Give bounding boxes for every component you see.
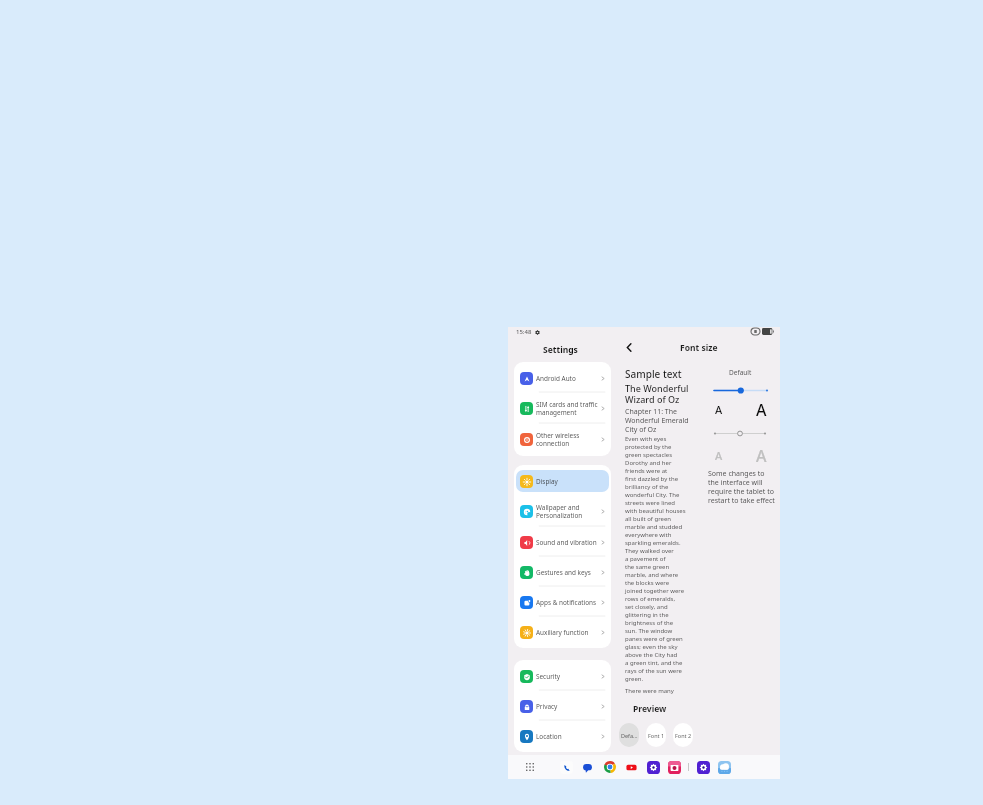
staticText: Wallpaper and Personalization <box>536 503 601 520</box>
button[interactable]: Back <box>622 340 636 354</box>
button[interactable]: Privacy <box>516 691 609 721</box>
staticText: A <box>715 448 723 463</box>
button[interactable]: Messages <box>580 760 594 774</box>
button[interactable]: Font size slider <box>712 386 769 395</box>
staticText: The Wonderful Wizard of Oz <box>625 382 689 406</box>
staticText: Security <box>536 672 601 681</box>
button[interactable]: All apps <box>522 759 538 775</box>
button[interactable]: Location <box>516 721 609 751</box>
staticText: Font 2 <box>675 732 692 739</box>
button[interactable]: Chrome <box>603 760 617 774</box>
staticText: Chapter 11: The Wonderful Emerald City o… <box>625 407 689 434</box>
button[interactable]: SIM cards and traffic management <box>516 393 609 424</box>
staticText: Defa... <box>621 732 638 739</box>
staticText: Auxiliary function <box>536 628 601 637</box>
button[interactable]: Auxiliary function <box>516 617 609 647</box>
button[interactable]: YouTube <box>624 760 638 774</box>
button[interactable]: Wallpaper and Personalization <box>516 496 609 527</box>
button[interactable]: Weather <box>717 760 731 774</box>
button[interactable]: Camera <box>667 760 681 774</box>
staticText: Sound and vibration <box>536 538 601 547</box>
staticText: Other wireless connection <box>536 431 601 448</box>
staticText: Location <box>536 732 601 741</box>
staticText: Android Auto <box>536 374 601 383</box>
button[interactable]: Settings <box>646 760 660 774</box>
staticText: Apps & notifications <box>536 598 601 607</box>
button[interactable]: Security <box>516 661 609 691</box>
button[interactable]: Settings <box>696 760 710 774</box>
staticText: Preview <box>633 703 667 715</box>
staticText: Gestures and keys <box>536 568 601 577</box>
button[interactable]: Other wireless connection <box>516 424 609 455</box>
button[interactable]: Gestures and keys <box>516 557 609 587</box>
staticText: Display <box>536 477 605 486</box>
button[interactable]: Display <box>516 470 609 492</box>
staticText: A <box>756 399 767 417</box>
staticText: Even with eyes protected by the green sp… <box>625 435 686 683</box>
staticText: Sample text <box>625 367 682 381</box>
staticText: Settings <box>543 344 578 356</box>
staticText: SIM cards and traffic management <box>536 400 601 417</box>
staticText: Some changes to the interface will requi… <box>708 469 775 505</box>
staticText: Privacy <box>536 702 601 711</box>
staticText: Font 1 <box>648 732 665 739</box>
staticText: A <box>756 445 767 463</box>
staticText: Font size <box>680 342 718 354</box>
button[interactable]: Android Auto <box>516 363 609 393</box>
staticText: Default <box>729 368 752 377</box>
button[interactable]: Apps & notifications <box>516 587 609 617</box>
button[interactable]: Bold text slider <box>713 429 767 438</box>
staticText: There were many <box>625 687 674 695</box>
staticText: A <box>715 402 723 417</box>
button[interactable]: Defa... <box>619 723 639 747</box>
button[interactable]: Font 2 <box>673 723 693 747</box>
button[interactable]: Font 1 <box>646 723 666 747</box>
button[interactable]: Sound and vibration <box>516 527 609 557</box>
staticText: 15:48 <box>516 328 532 336</box>
button[interactable]: Phone <box>559 760 573 774</box>
